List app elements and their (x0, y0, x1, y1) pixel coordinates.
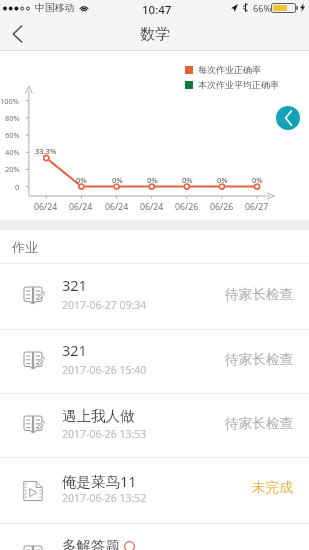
staticText: 每次作业正确率 (198, 64, 261, 75)
staticText: 06/24 (105, 201, 129, 213)
button[interactable]: 321 (0, 329, 309, 393)
staticText: 待家长检查 (225, 415, 293, 432)
button[interactable]: Previous (276, 106, 300, 130)
staticText: 0% (217, 175, 228, 185)
staticText: 遇上我人做 (62, 407, 135, 425)
staticText: 100% (0, 96, 20, 106)
staticText: 0% (76, 175, 87, 185)
staticText: 0% (252, 175, 263, 185)
staticText: 06/26 (210, 201, 234, 213)
staticText: 33.3% (35, 146, 57, 156)
staticText: 2017-06-27 09:34 (62, 298, 147, 312)
button[interactable]: 多解答题 (0, 523, 309, 550)
staticText: 多解答题 (62, 537, 120, 550)
staticText: 2017-06-26 13:52 (62, 491, 147, 505)
button[interactable]: 321 (0, 264, 309, 329)
staticText: 2017-06-26 15:40 (62, 363, 147, 377)
staticText: 0% (182, 175, 193, 185)
button[interactable]: 遇上我人做 (0, 393, 309, 457)
staticText: 06/24 (69, 201, 93, 213)
staticText: 0 (15, 182, 20, 192)
button[interactable]: 俺是菜鸟11 (0, 457, 309, 522)
staticText: 10:47 (142, 2, 172, 18)
staticText: 20% (5, 164, 20, 174)
staticText: 321 (62, 340, 87, 360)
staticText: 本次作业平均正确率 (198, 79, 279, 90)
staticText: 中国移动 (35, 2, 75, 14)
staticText: 80% (5, 113, 20, 123)
staticText: 06/27 (245, 201, 269, 213)
staticText: 俺是菜鸟11 (62, 471, 137, 491)
staticText: 66% (253, 2, 272, 15)
staticText: 40% (5, 147, 20, 157)
staticText: 60% (5, 130, 20, 140)
button[interactable]: Back (0, 16, 34, 51)
staticText: 321 (62, 275, 87, 295)
staticText: 0% (112, 175, 123, 185)
staticText: 2017-06-26 13:53 (62, 427, 147, 441)
staticText: 06/24 (34, 201, 58, 213)
staticText: 作业 (12, 239, 38, 255)
staticText: 数学 (140, 25, 170, 44)
staticText: 未完成 (252, 479, 293, 496)
staticText: 06/26 (175, 201, 199, 213)
staticText: 待家长检查 (225, 286, 293, 303)
staticText: 待家长检查 (225, 351, 293, 368)
staticText: 0% (147, 175, 158, 185)
staticText: 06/24 (140, 201, 164, 213)
